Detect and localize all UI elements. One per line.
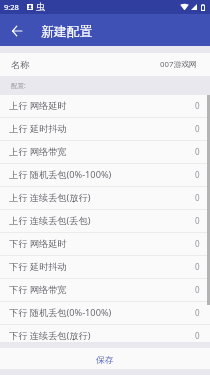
staticText: 配置: (11, 81, 26, 90)
staticText: 上行 网络延时 (9, 99, 67, 112)
staticText: 0 (195, 215, 200, 226)
staticText: 下行 随机丢包(0%-100%) (9, 306, 112, 319)
staticText: 0 (195, 146, 200, 157)
staticText: 0 (195, 261, 200, 272)
button[interactable]: Back (0, 14, 34, 46)
button[interactable]: 上行 网络带宽 (0, 141, 210, 164)
staticText: 9:28 (4, 2, 19, 12)
staticText: 上行 随机丢包(0%-100%) (9, 168, 112, 181)
button[interactable]: 下行 延时抖动 (0, 256, 210, 279)
staticText: 上行 网络带宽 (9, 145, 67, 158)
button[interactable]: 名称 (0, 53, 210, 76)
staticText: 0 (195, 169, 200, 180)
button[interactable]: 下行 随机丢包(0%-100%) (0, 302, 210, 325)
staticText: 0 (195, 123, 200, 134)
button[interactable]: 上行 连续丢包(放行) (0, 187, 210, 210)
staticText: 0 (195, 100, 200, 111)
staticText: 下行 延时抖动 (9, 260, 67, 273)
staticText: 下行 网络延时 (9, 237, 67, 250)
staticText: 007游戏网 (160, 59, 197, 70)
staticText: 新建配置 (41, 24, 93, 40)
button[interactable]: 下行 连续丢包(放行) (0, 325, 210, 348)
staticText: 虫 (36, 2, 45, 13)
staticText: 0 (195, 192, 200, 203)
staticText: 上行 连续丢包(放行) (9, 191, 91, 204)
staticText: 0 (195, 330, 200, 341)
staticText: 0 (195, 284, 200, 295)
button[interactable]: 上行 网络延时 (0, 95, 210, 118)
staticText: 名称 (11, 59, 30, 71)
button[interactable]: 上行 随机丢包(0%-100%) (0, 164, 210, 187)
staticText: 下行 网络带宽 (9, 283, 67, 296)
button[interactable]: 下行 网络带宽 (0, 279, 210, 302)
button[interactable]: 上行 延时抖动 (0, 118, 210, 141)
staticText: 上行 连续丢包(丢包) (9, 214, 91, 227)
button[interactable]: 保存 (0, 348, 210, 369)
button[interactable]: 下行 网络延时 (0, 233, 210, 256)
staticText: 下行 连续丢包(放行) (9, 329, 91, 342)
button[interactable]: 上行 连续丢包(丢包) (0, 210, 210, 233)
staticText: 0 (195, 307, 200, 318)
staticText: 上行 延时抖动 (9, 122, 67, 135)
staticText: 0 (195, 238, 200, 249)
staticText: 保存 (96, 355, 114, 366)
